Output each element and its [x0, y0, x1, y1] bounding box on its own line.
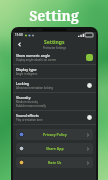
staticText: Sound effects — [16, 113, 39, 118]
button[interactable]: Locking — [86, 82, 93, 89]
button[interactable]: Display type — [13, 65, 96, 79]
button[interactable]: Privacy Policy — [16, 129, 93, 140]
button[interactable]: Back — [15, 40, 24, 49]
button[interactable]: Share App — [16, 143, 93, 154]
staticText: Play orientation tone — [16, 118, 43, 122]
staticText: Viscosity — [16, 95, 31, 100]
staticText: Rate Us — [48, 160, 62, 165]
button[interactable]: Locking — [13, 79, 96, 93]
staticText: Allow tool orientation locking — [16, 86, 53, 90]
staticText: Share App — [46, 146, 64, 151]
staticText: Display angle value(s) on screen — [16, 58, 57, 62]
staticText: Medium viscosity — [16, 100, 38, 104]
button[interactable]: Show numeric angle — [13, 51, 96, 65]
button[interactable]: Sound effects — [86, 114, 93, 121]
button[interactable]: Viscosity — [13, 93, 96, 111]
staticText: Bubble moves normally — [16, 104, 46, 108]
staticText: Protractor Settings — [43, 46, 66, 50]
staticText: Angle in degrees — [16, 72, 38, 76]
staticText: Setting — [0, 6, 108, 25]
staticText: 11:50 — [15, 33, 23, 37]
button[interactable]: Show numeric angle — [86, 54, 93, 61]
staticText: Privacy Policy — [43, 132, 67, 137]
button[interactable]: Sound effects — [13, 111, 96, 125]
staticText: Show numeric angle — [16, 53, 51, 58]
staticText: Display type — [16, 67, 37, 72]
staticText: Settings — [44, 39, 65, 46]
staticText: Locking — [16, 81, 29, 86]
button[interactable]: Rate Us — [16, 157, 93, 168]
